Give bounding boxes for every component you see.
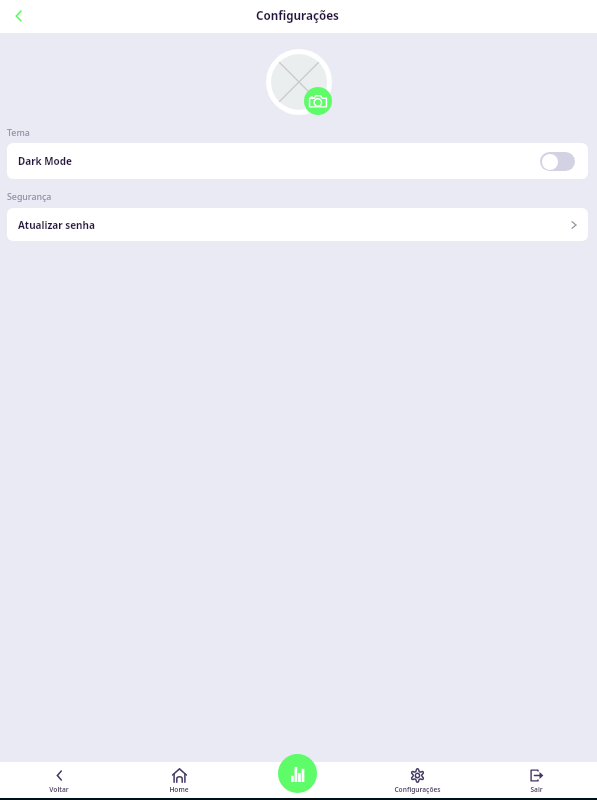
staticText: Atualizar senha xyxy=(18,218,95,231)
staticText: Home xyxy=(169,785,189,794)
button[interactable]: Configurações xyxy=(358,762,477,800)
staticText: Tema xyxy=(7,127,30,139)
button[interactable]: Voltar xyxy=(5,3,31,29)
button[interactable]: Dark Mode xyxy=(7,143,588,179)
button[interactable]: Sair xyxy=(477,762,596,800)
staticText: Sair xyxy=(530,785,543,794)
button[interactable]: Estatísticas xyxy=(278,754,317,793)
button[interactable]: Voltar xyxy=(0,762,119,800)
staticText: Segurança xyxy=(7,191,52,203)
staticText: Configurações xyxy=(256,8,339,24)
button[interactable]: Atualizar senha xyxy=(7,208,588,241)
button[interactable]: Home xyxy=(119,762,239,800)
button[interactable]: Alterar foto de perfil xyxy=(304,87,332,115)
staticText: Voltar xyxy=(49,785,69,794)
button[interactable]: Dark Mode xyxy=(540,152,575,171)
staticText: Dark Mode xyxy=(18,154,72,167)
staticText: Configurações xyxy=(394,785,441,794)
